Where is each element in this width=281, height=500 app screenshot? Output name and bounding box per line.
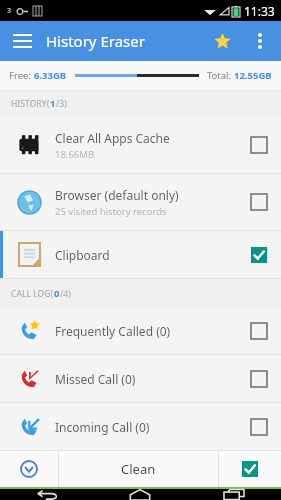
staticText: 18.66MB (55, 148, 95, 161)
staticText: Incoming Call (0) (55, 419, 150, 435)
button[interactable]: Incoming Call (0) (0, 403, 281, 450)
button[interactable]: More options (246, 27, 274, 55)
button[interactable]: Clipboard (0, 231, 281, 278)
button[interactable]: Back (0, 489, 93, 500)
button[interactable]: Browser (default only) (0, 174, 281, 230)
staticText: Missed Call (0) (55, 371, 136, 387)
button[interactable]: Unchecked (251, 194, 267, 210)
staticText: Clean (121, 460, 156, 478)
button[interactable]: Missed Call (0) (0, 355, 281, 402)
staticText: Free: (9, 69, 34, 82)
button[interactable]: Clear All Apps Cache (0, 117, 281, 173)
button[interactable]: Clean (59, 451, 218, 487)
button[interactable]: Frequently Called (0) (0, 307, 281, 354)
staticText: 3 (7, 6, 12, 16)
button[interactable]: Checked (219, 451, 281, 487)
staticText: Browser (default only) (55, 187, 179, 203)
staticText: 1 (50, 97, 56, 110)
staticText: 0 (54, 287, 60, 300)
button[interactable]: Checked (251, 247, 267, 263)
staticText: Frequently Called (0) (55, 323, 171, 339)
button[interactable]: Home (93, 489, 187, 500)
button[interactable]: Unchecked (251, 323, 267, 339)
button[interactable]: Unchecked (251, 419, 267, 435)
button[interactable]: Schedule (0, 451, 58, 487)
staticText: /4) (60, 288, 71, 300)
staticText: 12.55GB (234, 69, 272, 82)
staticText: HISTORY( (11, 98, 50, 110)
staticText: 25 visited history records (55, 205, 167, 218)
button[interactable]: Recents (187, 489, 281, 500)
staticText: 6.33GB (34, 69, 67, 82)
button[interactable]: Open navigation drawer (8, 27, 36, 55)
button[interactable]: Checked (242, 461, 258, 477)
staticText: History Eraser (46, 31, 145, 51)
button[interactable]: Unchecked (251, 137, 267, 153)
staticText: Clipboard (55, 247, 110, 263)
staticText: Clear All Apps Cache (55, 130, 170, 146)
staticText: CALL LOG( (11, 288, 54, 300)
staticText: 11:33 (244, 3, 275, 19)
button[interactable]: Unchecked (251, 371, 267, 387)
staticText: /3) (56, 98, 67, 110)
staticText: Total: (207, 69, 234, 82)
button[interactable]: Favorite (207, 26, 237, 56)
